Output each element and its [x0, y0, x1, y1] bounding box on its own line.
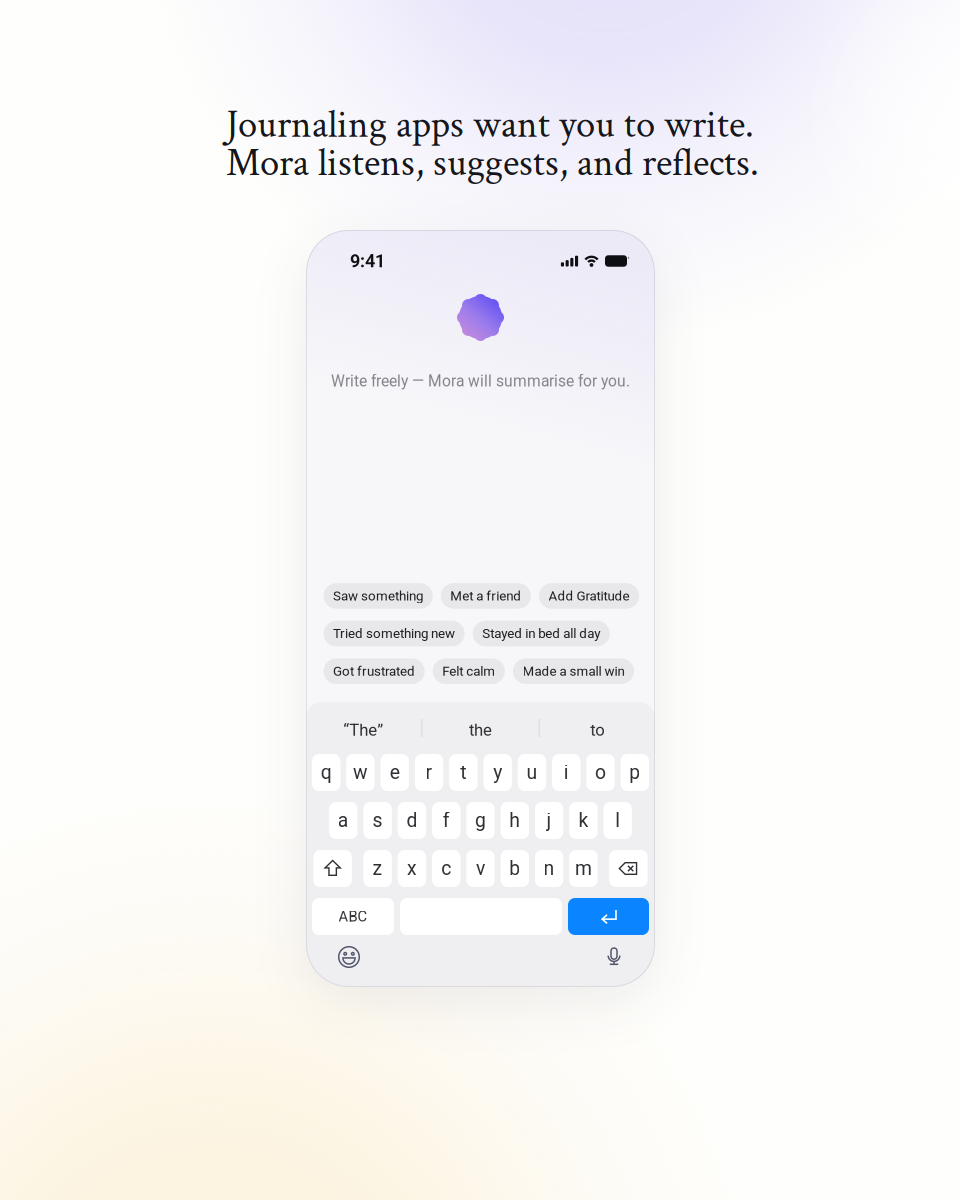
- staticText: l: [615, 809, 620, 832]
- staticText: t: [460, 761, 466, 784]
- button[interactable]: Add Gratitude: [539, 583, 639, 609]
- button[interactable]: t: [449, 754, 477, 791]
- staticText: d: [406, 809, 417, 832]
- button[interactable]: Met a friend: [441, 583, 531, 609]
- staticText: “The”: [343, 720, 383, 740]
- staticText: y: [493, 761, 502, 784]
- staticText: w: [353, 761, 368, 784]
- staticText: Add Gratitude: [548, 588, 629, 604]
- button[interactable]: p: [621, 754, 649, 791]
- staticText: g: [475, 809, 486, 832]
- staticText: b: [509, 857, 520, 880]
- button[interactable]: d: [398, 802, 426, 839]
- staticText: 9:41: [350, 250, 385, 272]
- button[interactable]: Dictation: [603, 945, 625, 969]
- button[interactable]: to: [540, 702, 656, 754]
- button[interactable]: b: [501, 850, 529, 887]
- staticText: Stayed in bed all day: [482, 626, 600, 641]
- staticText: j: [547, 809, 552, 832]
- button[interactable]: Tried something new: [323, 621, 465, 646]
- button[interactable]: z: [363, 850, 392, 887]
- button[interactable]: g: [466, 802, 495, 839]
- button[interactable]: a: [329, 802, 357, 839]
- staticText: u: [526, 761, 537, 784]
- button[interactable]: Return: [568, 898, 649, 935]
- button[interactable]: i: [552, 754, 580, 791]
- button[interactable]: n: [535, 850, 563, 887]
- button[interactable]: s: [363, 802, 392, 839]
- button[interactable]: q: [312, 754, 340, 791]
- staticText: Tried something new: [333, 626, 455, 641]
- staticText: s: [373, 809, 383, 832]
- staticText: k: [578, 809, 588, 832]
- button[interactable]: the: [422, 702, 539, 754]
- staticText: x: [407, 857, 417, 880]
- button[interactable]: c: [432, 850, 460, 887]
- button[interactable]: ABC: [312, 898, 394, 935]
- button[interactable]: Shift: [313, 850, 352, 887]
- button[interactable]: k: [569, 802, 598, 839]
- staticText: h: [509, 809, 520, 832]
- staticText: q: [321, 761, 332, 784]
- button[interactable]: Got frustrated: [323, 658, 425, 684]
- button[interactable]: j: [535, 802, 563, 839]
- staticText: to: [590, 720, 605, 740]
- button[interactable]: w: [346, 754, 375, 791]
- button[interactable]: l: [603, 802, 632, 839]
- staticText: p: [629, 761, 640, 784]
- staticText: Made a small win: [522, 663, 624, 679]
- button[interactable]: u: [518, 754, 546, 791]
- staticText: Got frustrated: [333, 663, 415, 679]
- button[interactable]: e: [380, 754, 409, 791]
- button[interactable]: Made a small win: [513, 658, 634, 684]
- button[interactable]: Stayed in bed all day: [473, 621, 610, 646]
- staticText: a: [338, 809, 349, 832]
- staticText: z: [373, 857, 383, 880]
- button[interactable]: m: [569, 850, 598, 887]
- button[interactable]: r: [415, 754, 443, 791]
- button[interactable]: Delete: [609, 850, 648, 887]
- staticText: i: [564, 761, 569, 784]
- staticText: ABC: [338, 908, 367, 925]
- staticText: c: [441, 857, 451, 880]
- button[interactable]: v: [466, 850, 495, 887]
- button[interactable]: “The”: [305, 702, 421, 754]
- staticText: Journaling apps want you to write.: [226, 100, 754, 150]
- staticText: Mora listens, suggests, and reflects.: [226, 138, 759, 189]
- button[interactable]: o: [586, 754, 615, 791]
- staticText: v: [476, 857, 485, 880]
- staticText: o: [595, 761, 606, 784]
- button[interactable]: Felt calm: [433, 658, 505, 684]
- button[interactable]: Saw something: [323, 583, 433, 609]
- staticText: f: [443, 809, 450, 832]
- staticText: n: [544, 857, 555, 880]
- staticText: r: [425, 761, 432, 784]
- staticText: Felt calm: [442, 663, 495, 679]
- staticText: m: [575, 857, 592, 880]
- staticText: Met a friend: [450, 588, 521, 604]
- staticText: e: [390, 761, 400, 784]
- staticText: the: [469, 720, 492, 740]
- staticText: Write freely — Mora will summarise for y…: [331, 372, 630, 390]
- staticText: Saw something: [333, 588, 423, 604]
- button[interactable]: Emoji keyboard: [337, 945, 361, 969]
- button[interactable]: x: [398, 850, 426, 887]
- button[interactable]: f: [432, 802, 460, 839]
- button[interactable]: h: [501, 802, 529, 839]
- button[interactable]: y: [483, 754, 512, 791]
